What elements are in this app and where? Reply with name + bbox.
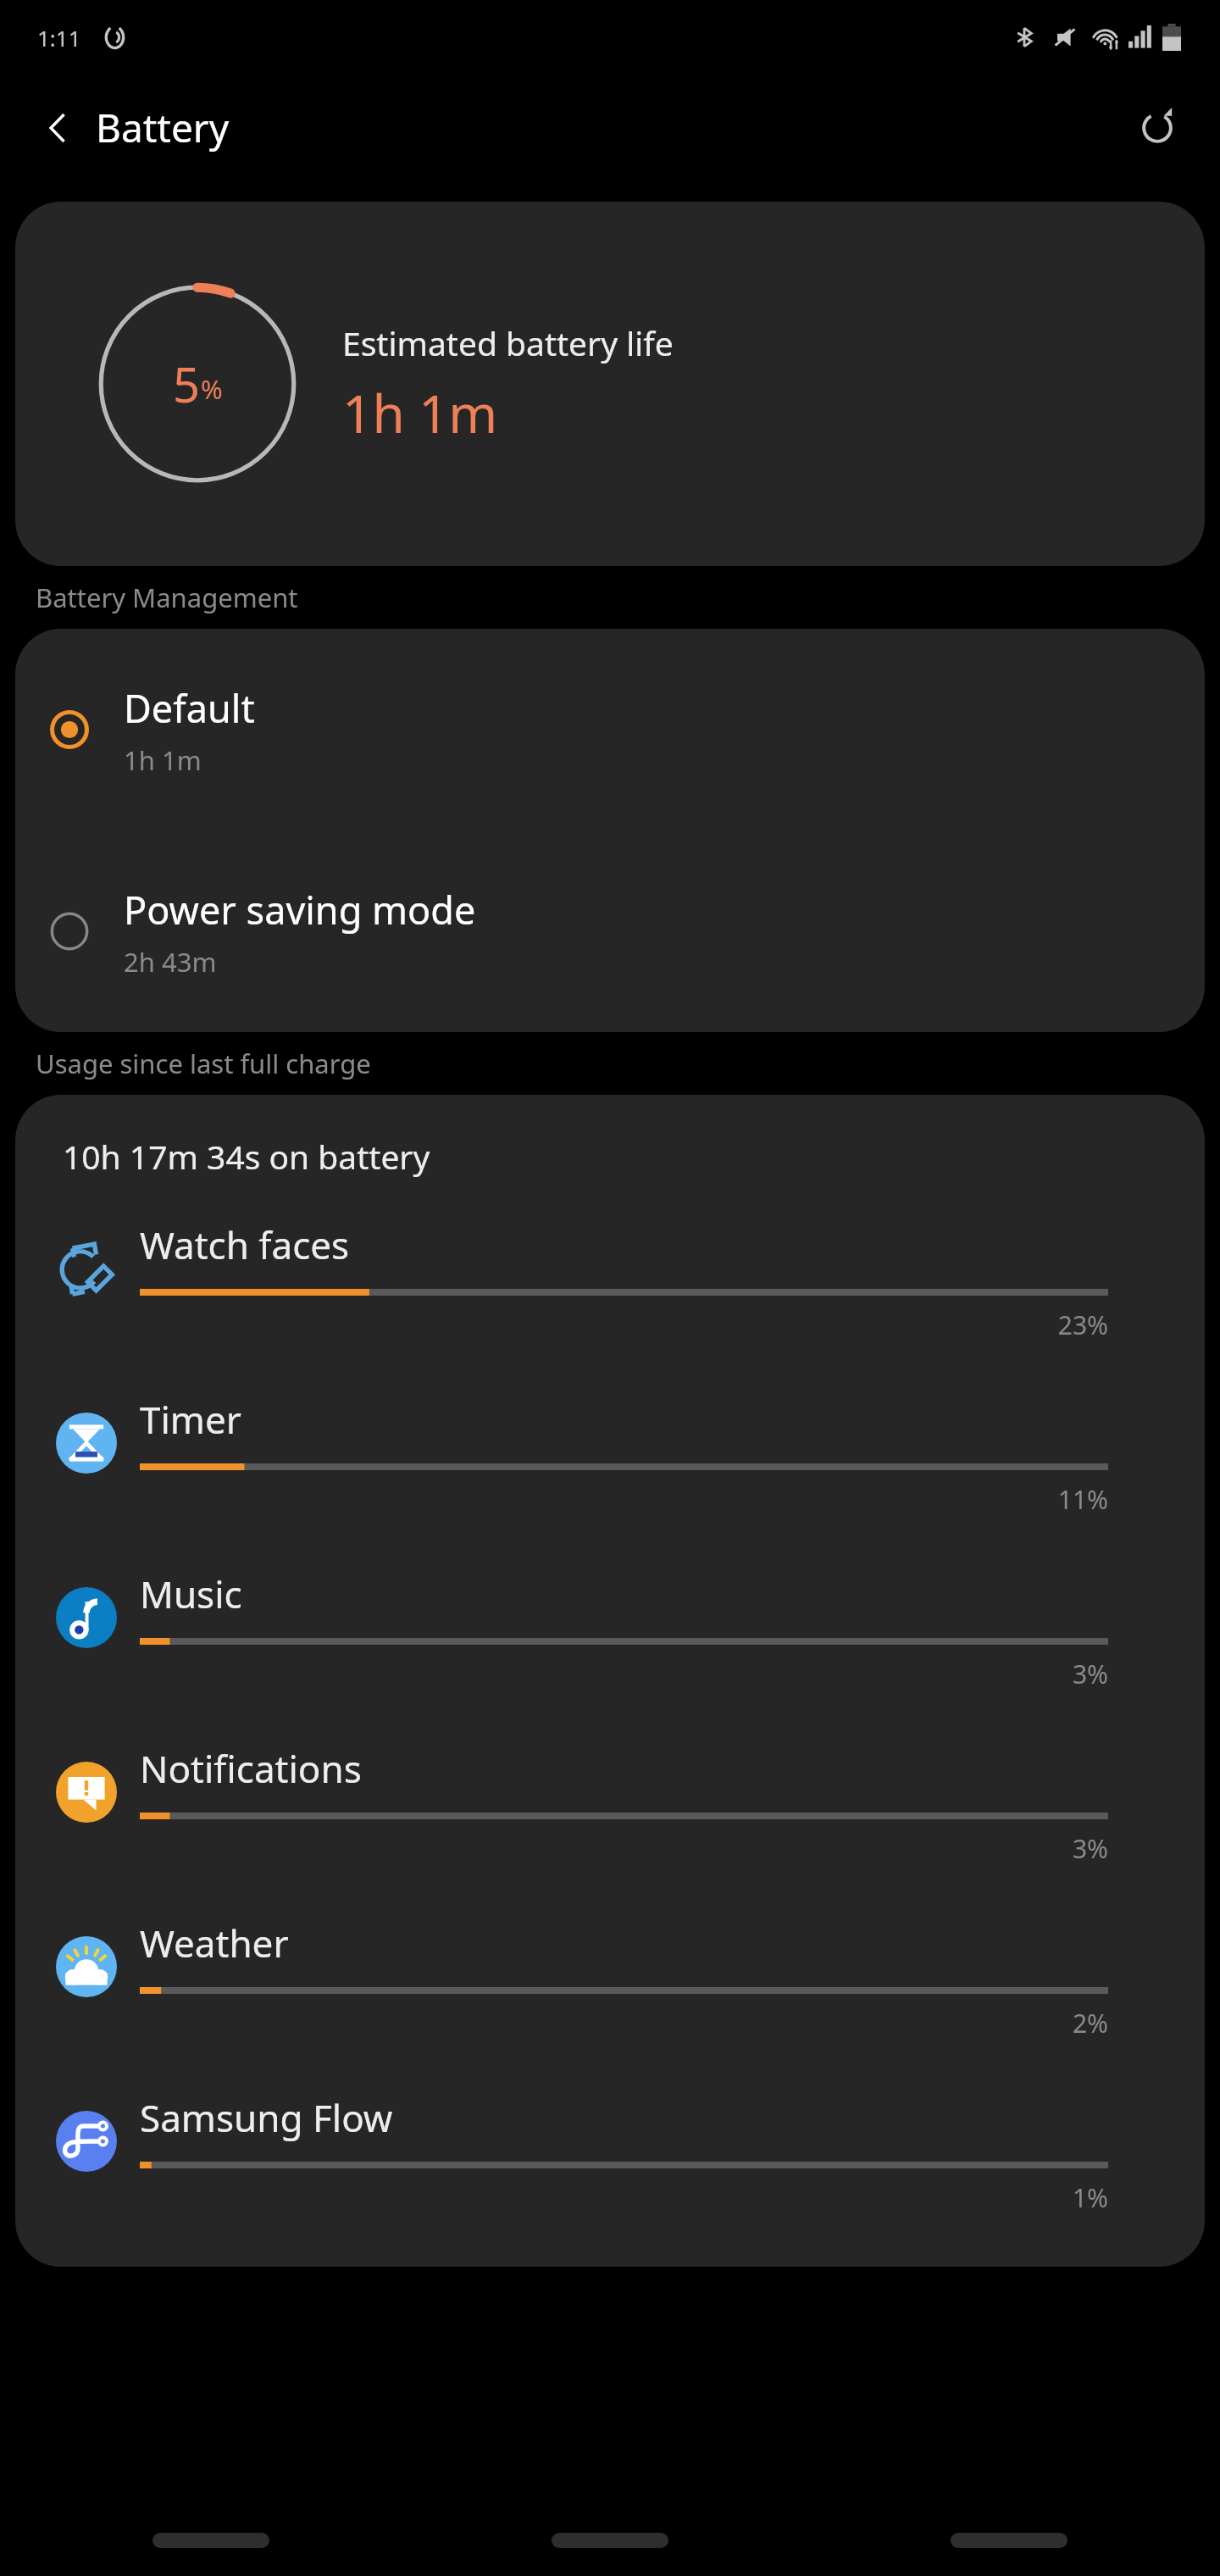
staticText: Battery <box>96 101 230 154</box>
staticText: 2h 43m <box>124 944 217 980</box>
staticText: Estimated battery life <box>342 320 674 365</box>
staticText: Notifications <box>140 1743 362 1794</box>
staticText: % <box>201 371 223 407</box>
button[interactable]: Weather <box>15 1918 1205 2092</box>
button[interactable]: Samsung Flow <box>15 2092 1205 2267</box>
staticText: 1:11 <box>37 23 81 53</box>
staticText: Power saving mode <box>124 884 476 935</box>
staticText: 3% <box>140 1657 1108 1691</box>
staticText: Samsung Flow <box>140 2092 393 2143</box>
staticText: 10h 17m 34s on battery <box>63 1134 430 1179</box>
staticText: 11% <box>140 1482 1108 1517</box>
button[interactable]: Default <box>15 629 1205 830</box>
button[interactable]: Power saving mode <box>15 830 1205 1032</box>
staticText: Weather <box>140 1918 289 1968</box>
button[interactable]: Watch faces <box>15 1219 1205 1394</box>
staticText: Music <box>140 1568 242 1619</box>
staticText: 2% <box>140 2006 1108 2040</box>
button[interactable]: Music <box>15 1568 1205 1743</box>
button[interactable]: Notifications <box>15 1743 1205 1918</box>
button[interactable]: 5 <box>15 202 1205 566</box>
staticText: 5 <box>173 352 201 416</box>
button[interactable]: Recents <box>152 2522 269 2559</box>
button[interactable]: Back <box>24 94 91 162</box>
staticText: Usage since last full charge <box>36 1046 371 1081</box>
staticText: 1h 1m <box>124 742 202 778</box>
button[interactable]: Home <box>552 2522 668 2559</box>
staticText: 1% <box>140 2180 1108 2215</box>
staticText: Battery Management <box>36 580 298 615</box>
staticText: Default <box>124 682 255 734</box>
staticText: 23% <box>140 1307 1108 1342</box>
button[interactable]: Refresh <box>1122 92 1193 164</box>
button[interactable]: Back <box>951 2522 1067 2559</box>
staticText: 3% <box>140 1831 1108 1866</box>
button[interactable]: Timer <box>15 1394 1205 1568</box>
staticText: 1h 1m <box>342 377 498 448</box>
staticText: Timer <box>140 1394 241 1445</box>
staticText: Watch faces <box>140 1219 350 1270</box>
